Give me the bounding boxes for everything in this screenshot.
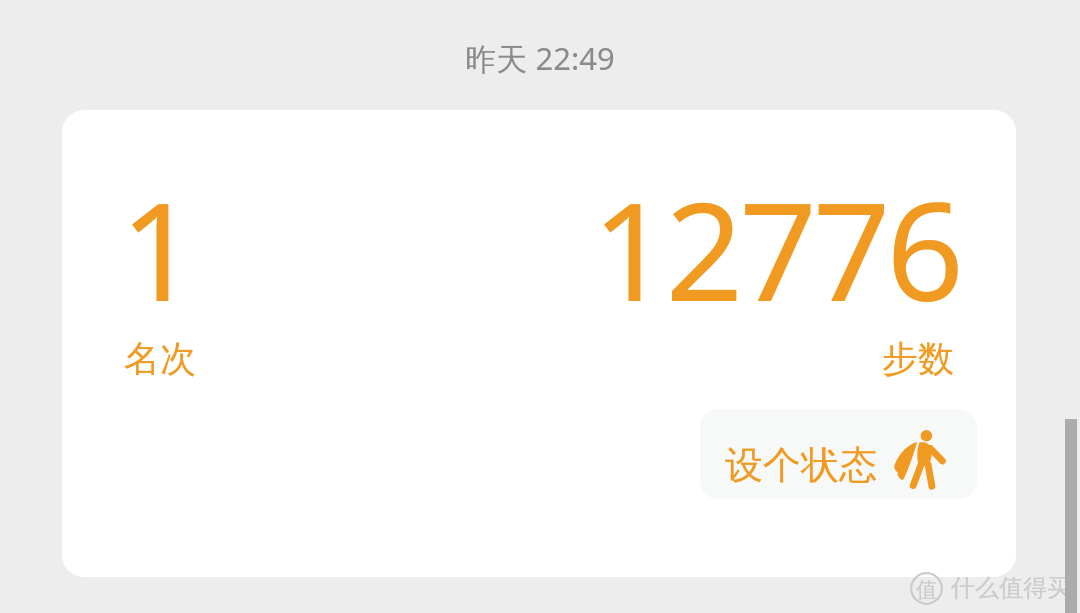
other: Walking status xyxy=(892,420,947,490)
staticText: 昨天 22:49 xyxy=(0,37,1080,79)
staticText: 步数 xyxy=(882,336,954,381)
staticText: 1 xyxy=(120,156,198,341)
button[interactable]: 设个状态 xyxy=(700,409,977,499)
button[interactable]: 1 xyxy=(62,110,1016,577)
staticText: 值 xyxy=(916,577,937,603)
staticText: 设个状态 xyxy=(725,441,877,489)
staticText: 12776 xyxy=(592,156,960,341)
staticText: 什么值得买 xyxy=(951,573,1071,603)
staticText: 名次 xyxy=(124,336,196,381)
